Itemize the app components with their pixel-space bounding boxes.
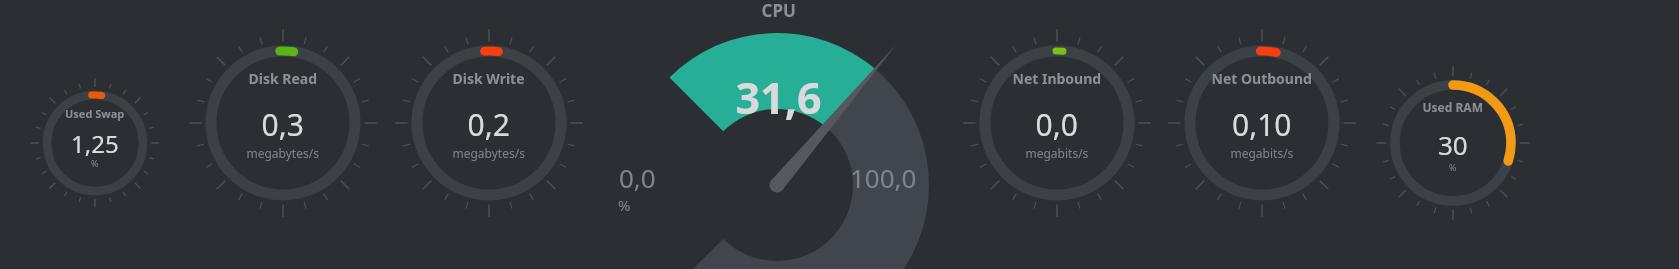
button[interactable]	[0, 0, 1679, 269]
other: System monitor gauges	[0, 0, 1679, 269]
